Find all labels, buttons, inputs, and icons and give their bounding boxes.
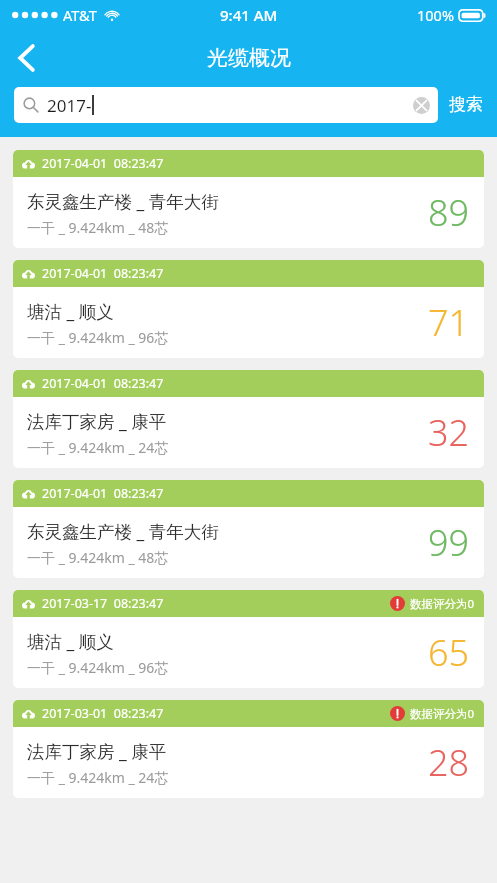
staticText: 2017-04-01 08:23:47: [42, 485, 164, 502]
staticText: 2017-04-01 08:23:47: [42, 265, 164, 282]
button[interactable]: 2017-03-17 08:23:47: [13, 590, 484, 688]
staticText: 东灵鑫生产楼 _ 青年大街: [27, 189, 219, 213]
staticText: 一干 _ 9.424km _ 48芯: [27, 218, 169, 237]
staticText: 99: [428, 518, 470, 567]
staticText: 塘沽 _ 顺义: [27, 629, 114, 653]
button[interactable]: 2017-04-01 08:23:47: [13, 370, 484, 468]
staticText: 2017-: [47, 94, 92, 117]
staticText: 搜索: [449, 94, 483, 115]
button[interactable]: 2017-04-01 08:23:47: [13, 260, 484, 358]
staticText: 2017-04-01 08:23:47: [42, 155, 164, 172]
staticText: 法库丁家房 _ 康平: [27, 739, 167, 763]
staticText: 32: [428, 408, 470, 457]
staticText: 一干 _ 9.424km _ 96芯: [27, 328, 169, 347]
staticText: 一干 _ 9.424km _ 24芯: [27, 768, 169, 787]
button[interactable]: 2017-: [14, 87, 438, 123]
button[interactable]: Back: [0, 32, 52, 84]
staticText: 100%: [417, 5, 454, 25]
button[interactable]: 2017-04-01 08:23:47: [13, 480, 484, 578]
staticText: 光缆概况: [207, 45, 291, 71]
staticText: 2017-04-01 08:23:47: [42, 375, 164, 392]
staticText: 一干 _ 9.424km _ 48芯: [27, 548, 169, 567]
staticText: 28: [428, 738, 470, 787]
staticText: 数据评分为0: [410, 596, 475, 612]
button[interactable]: 搜索: [438, 94, 485, 115]
button[interactable]: 2017-03-01 08:23:47: [13, 700, 484, 798]
staticText: 2017-03-17 08:23:47: [42, 595, 164, 612]
staticText: 数据评分为0: [410, 706, 475, 722]
staticText: 71: [428, 298, 470, 347]
staticText: 65: [428, 628, 470, 677]
button[interactable]: 2017-04-01 08:23:47: [13, 150, 484, 248]
staticText: 法库丁家房 _ 康平: [27, 409, 167, 433]
staticText: AT&T: [63, 5, 97, 25]
staticText: 塘沽 _ 顺义: [27, 299, 114, 323]
staticText: 一干 _ 9.424km _ 24芯: [27, 438, 169, 457]
staticText: 一干 _ 9.424km _ 96芯: [27, 658, 169, 677]
staticText: 东灵鑫生产楼 _ 青年大街: [27, 519, 219, 543]
staticText: 2017-03-01 08:23:47: [42, 705, 164, 722]
staticText: 9:41 AM: [220, 5, 278, 25]
staticText: 89: [428, 188, 470, 237]
button[interactable]: Clear text: [412, 96, 430, 114]
